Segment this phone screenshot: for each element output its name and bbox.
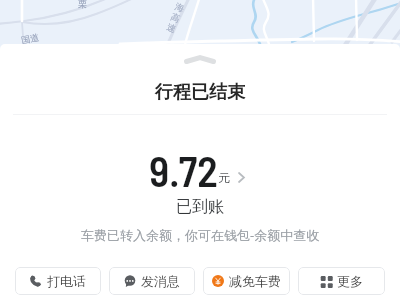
button[interactable]: 打电话 (15, 267, 101, 295)
staticText: 打电话 (47, 273, 86, 289)
staticText: 发消息 (141, 273, 180, 289)
staticText: 海 (173, 0, 186, 14)
staticText: 速 (165, 21, 178, 34)
staticText: 栗 (78, 0, 87, 9)
button[interactable]: 9.72 (0, 145, 397, 195)
staticText: 高 (169, 11, 182, 24)
button[interactable]: 更多 (298, 267, 385, 295)
staticText: 行程已结束 (155, 81, 245, 104)
staticText: 元 (218, 170, 230, 185)
staticText: 已到账 (176, 197, 224, 217)
staticText: 更多 (337, 273, 363, 289)
staticText: 减免车费 (229, 273, 281, 289)
button[interactable]: 减免车费 (203, 267, 290, 295)
button[interactable]: 发消息 (109, 267, 195, 295)
staticText: 9.72 (149, 145, 218, 195)
staticText: 国道 (20, 31, 40, 46)
staticText: 车费已转入余额，你可在钱包-余额中查收 (81, 226, 320, 244)
